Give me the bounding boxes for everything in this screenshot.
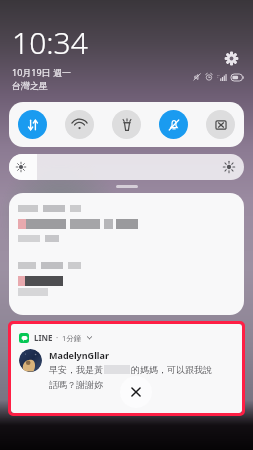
button[interactable]: [9, 193, 244, 315]
button[interactable]: Brightness: [9, 154, 244, 180]
button[interactable]: Wi-Fi: [65, 110, 94, 139]
button[interactable]: Settings: [219, 46, 243, 70]
staticText: 10月19日 週一: [12, 66, 71, 78]
staticText: 話嗎？謝謝妳: [49, 379, 103, 390]
staticText: MadelynGllar: [49, 349, 109, 361]
button[interactable]: Screenshot: [206, 110, 235, 139]
staticText: 台灣之星: [12, 80, 48, 91]
button[interactable]: Flashlight: [112, 110, 141, 139]
staticText: LINE: [34, 332, 53, 343]
staticText: ·: [56, 332, 59, 343]
button[interactable]: Close: [120, 376, 152, 408]
button[interactable]: Mute: [159, 110, 188, 139]
button[interactable]: Mobile data: [18, 110, 47, 139]
button[interactable]: LINE: [11, 324, 242, 413]
staticText: 1分鐘: [62, 333, 82, 343]
staticText: 10:34: [12, 22, 88, 63]
staticText: 早安，我是黃: [49, 364, 103, 375]
staticText: 的媽媽，可以跟我說: [131, 364, 212, 375]
